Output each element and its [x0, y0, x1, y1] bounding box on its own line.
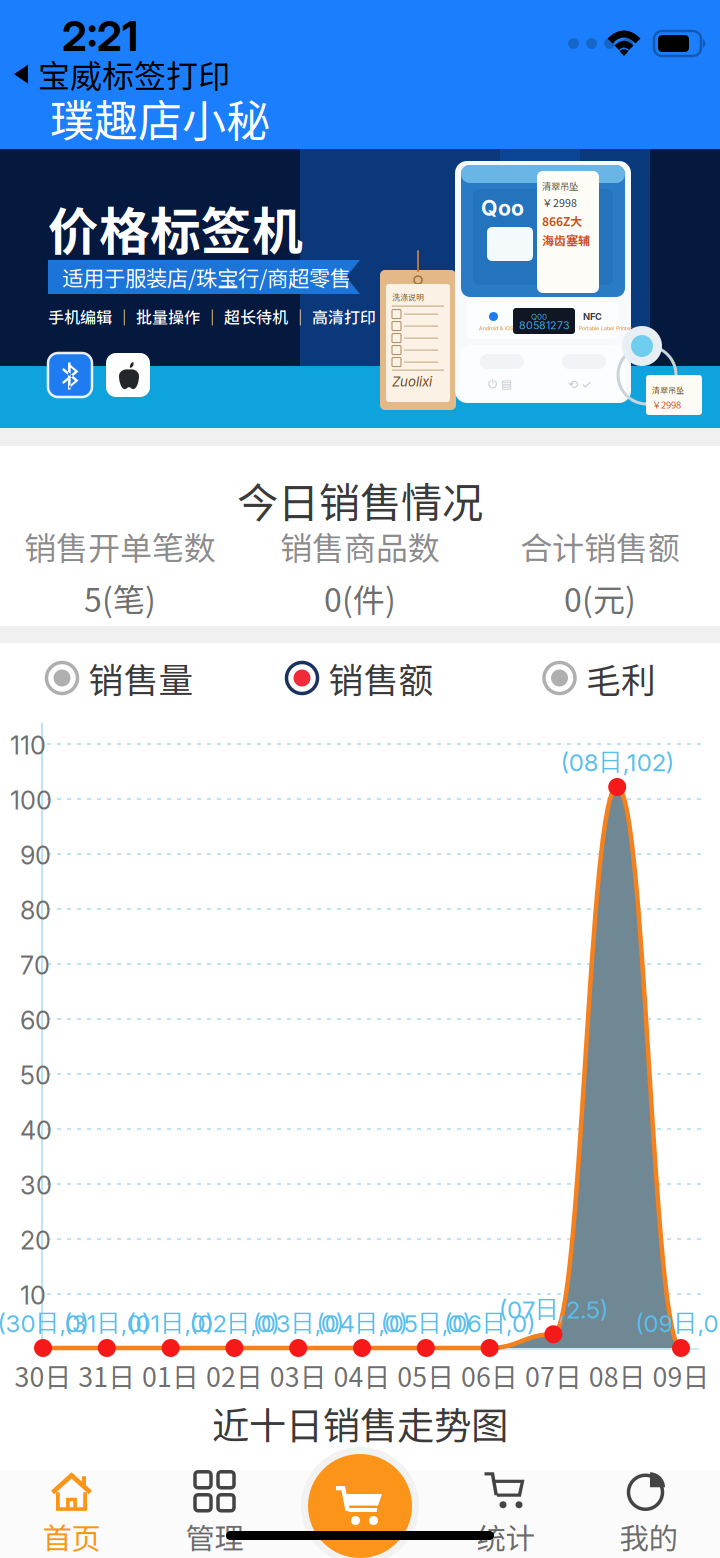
- staticText: (05日,0): [381, 1308, 471, 1338]
- button[interactable]: 统计: [434, 1471, 577, 1558]
- staticText: (08日,102): [561, 747, 674, 777]
- staticText: 近十日销售走势图: [212, 1396, 508, 1450]
- staticText: 07日: [525, 1356, 582, 1395]
- staticText: (01日,0): [128, 1308, 214, 1338]
- staticText: 璞趣店小秘: [50, 86, 270, 150]
- staticText: 50: [20, 1060, 51, 1091]
- staticText: 手机编辑 ｜ 批量操作 ｜ 超长待机 ｜ 高清打印: [48, 305, 376, 328]
- staticText: (09日,0): [635, 1308, 720, 1338]
- staticText: 30日: [14, 1356, 71, 1395]
- staticText: ￥2998: [542, 194, 577, 210]
- staticText: 我的: [619, 1515, 677, 1558]
- staticText: 05日: [397, 1356, 454, 1395]
- staticText: 销售额: [328, 653, 433, 703]
- staticText: (07日,2.5): [499, 1294, 608, 1324]
- staticText: 0(元): [564, 575, 636, 621]
- staticText: 20: [20, 1225, 51, 1256]
- staticText: 5(笔): [84, 575, 156, 621]
- button[interactable]: 毛利: [480, 643, 720, 713]
- staticText: ￥2998: [652, 398, 681, 411]
- staticText: 60: [20, 1005, 51, 1036]
- staticText: 价格标签机: [48, 191, 303, 264]
- staticText: 0(件): [324, 575, 396, 621]
- staticText: 40: [20, 1115, 52, 1146]
- staticText: Portable Label Printer: [579, 325, 632, 331]
- staticText: (02日,0): [189, 1308, 279, 1338]
- staticText: 09日: [652, 1356, 709, 1395]
- staticText: 08日: [589, 1356, 646, 1395]
- staticText: 06日: [461, 1356, 518, 1395]
- staticText: 80: [20, 895, 51, 926]
- staticText: 02日: [206, 1356, 263, 1395]
- staticText: ⏻ ▤: [488, 377, 512, 391]
- staticText: 管理: [185, 1515, 243, 1558]
- staticText: 宝威标签打印: [38, 51, 230, 97]
- staticText: 合计销售额: [520, 523, 680, 569]
- staticText: 04日: [333, 1356, 390, 1395]
- staticText: Q00: [531, 312, 547, 322]
- staticText: (06日,0): [444, 1308, 535, 1338]
- staticText: (04日,0): [316, 1308, 407, 1338]
- staticText: 海齿塞辅: [542, 231, 590, 249]
- staticText: 清翠吊坠: [652, 384, 684, 396]
- staticText: 今日销售情况: [237, 470, 483, 530]
- staticText: 清翠吊坠: [542, 179, 578, 192]
- staticText: 销售量: [88, 653, 193, 703]
- button[interactable]: 首页: [0, 1471, 143, 1558]
- staticText: 统计: [476, 1515, 534, 1558]
- staticText: 10: [20, 1280, 46, 1311]
- button[interactable]: 宝威标签打印: [0, 44, 248, 104]
- button[interactable]: 销售量: [0, 643, 240, 713]
- staticText: Android & iOS: [479, 325, 513, 331]
- staticText: 80581273: [519, 319, 570, 332]
- staticText: Zuolixi: [392, 374, 432, 390]
- staticText: NFC: [583, 311, 602, 322]
- staticText: 2:21: [62, 11, 138, 61]
- staticText: (03日,0): [253, 1308, 344, 1338]
- staticText: 洗涤说明: [392, 291, 424, 303]
- staticText: 销售开单笔数: [24, 523, 216, 569]
- staticText: 销售商品数: [280, 523, 440, 569]
- staticText: 100: [10, 785, 52, 816]
- staticText: 70: [20, 950, 50, 981]
- staticText: (30日,0): [0, 1308, 88, 1338]
- staticText: 110: [10, 730, 46, 761]
- staticText: 30: [20, 1170, 52, 1201]
- staticText: 首页: [42, 1515, 100, 1558]
- staticText: 03日: [270, 1356, 327, 1395]
- button[interactable]: 我的: [577, 1471, 720, 1558]
- staticText: ⟲ ✓: [568, 377, 592, 391]
- button[interactable]: 销售额: [240, 643, 480, 713]
- staticText: 31日: [78, 1356, 135, 1395]
- staticText: (31日,0): [64, 1308, 150, 1338]
- staticText: 90: [20, 840, 51, 871]
- staticText: 01日: [142, 1356, 199, 1395]
- staticText: Qoo: [481, 195, 524, 221]
- button[interactable]: 管理: [143, 1471, 286, 1558]
- staticText: 866Z大: [542, 212, 582, 229]
- staticText: 适用于服装店/珠宝行/商超零售: [62, 262, 351, 292]
- button[interactable]: 新建销售单: [301, 1447, 419, 1558]
- staticText: 毛利: [586, 653, 656, 703]
